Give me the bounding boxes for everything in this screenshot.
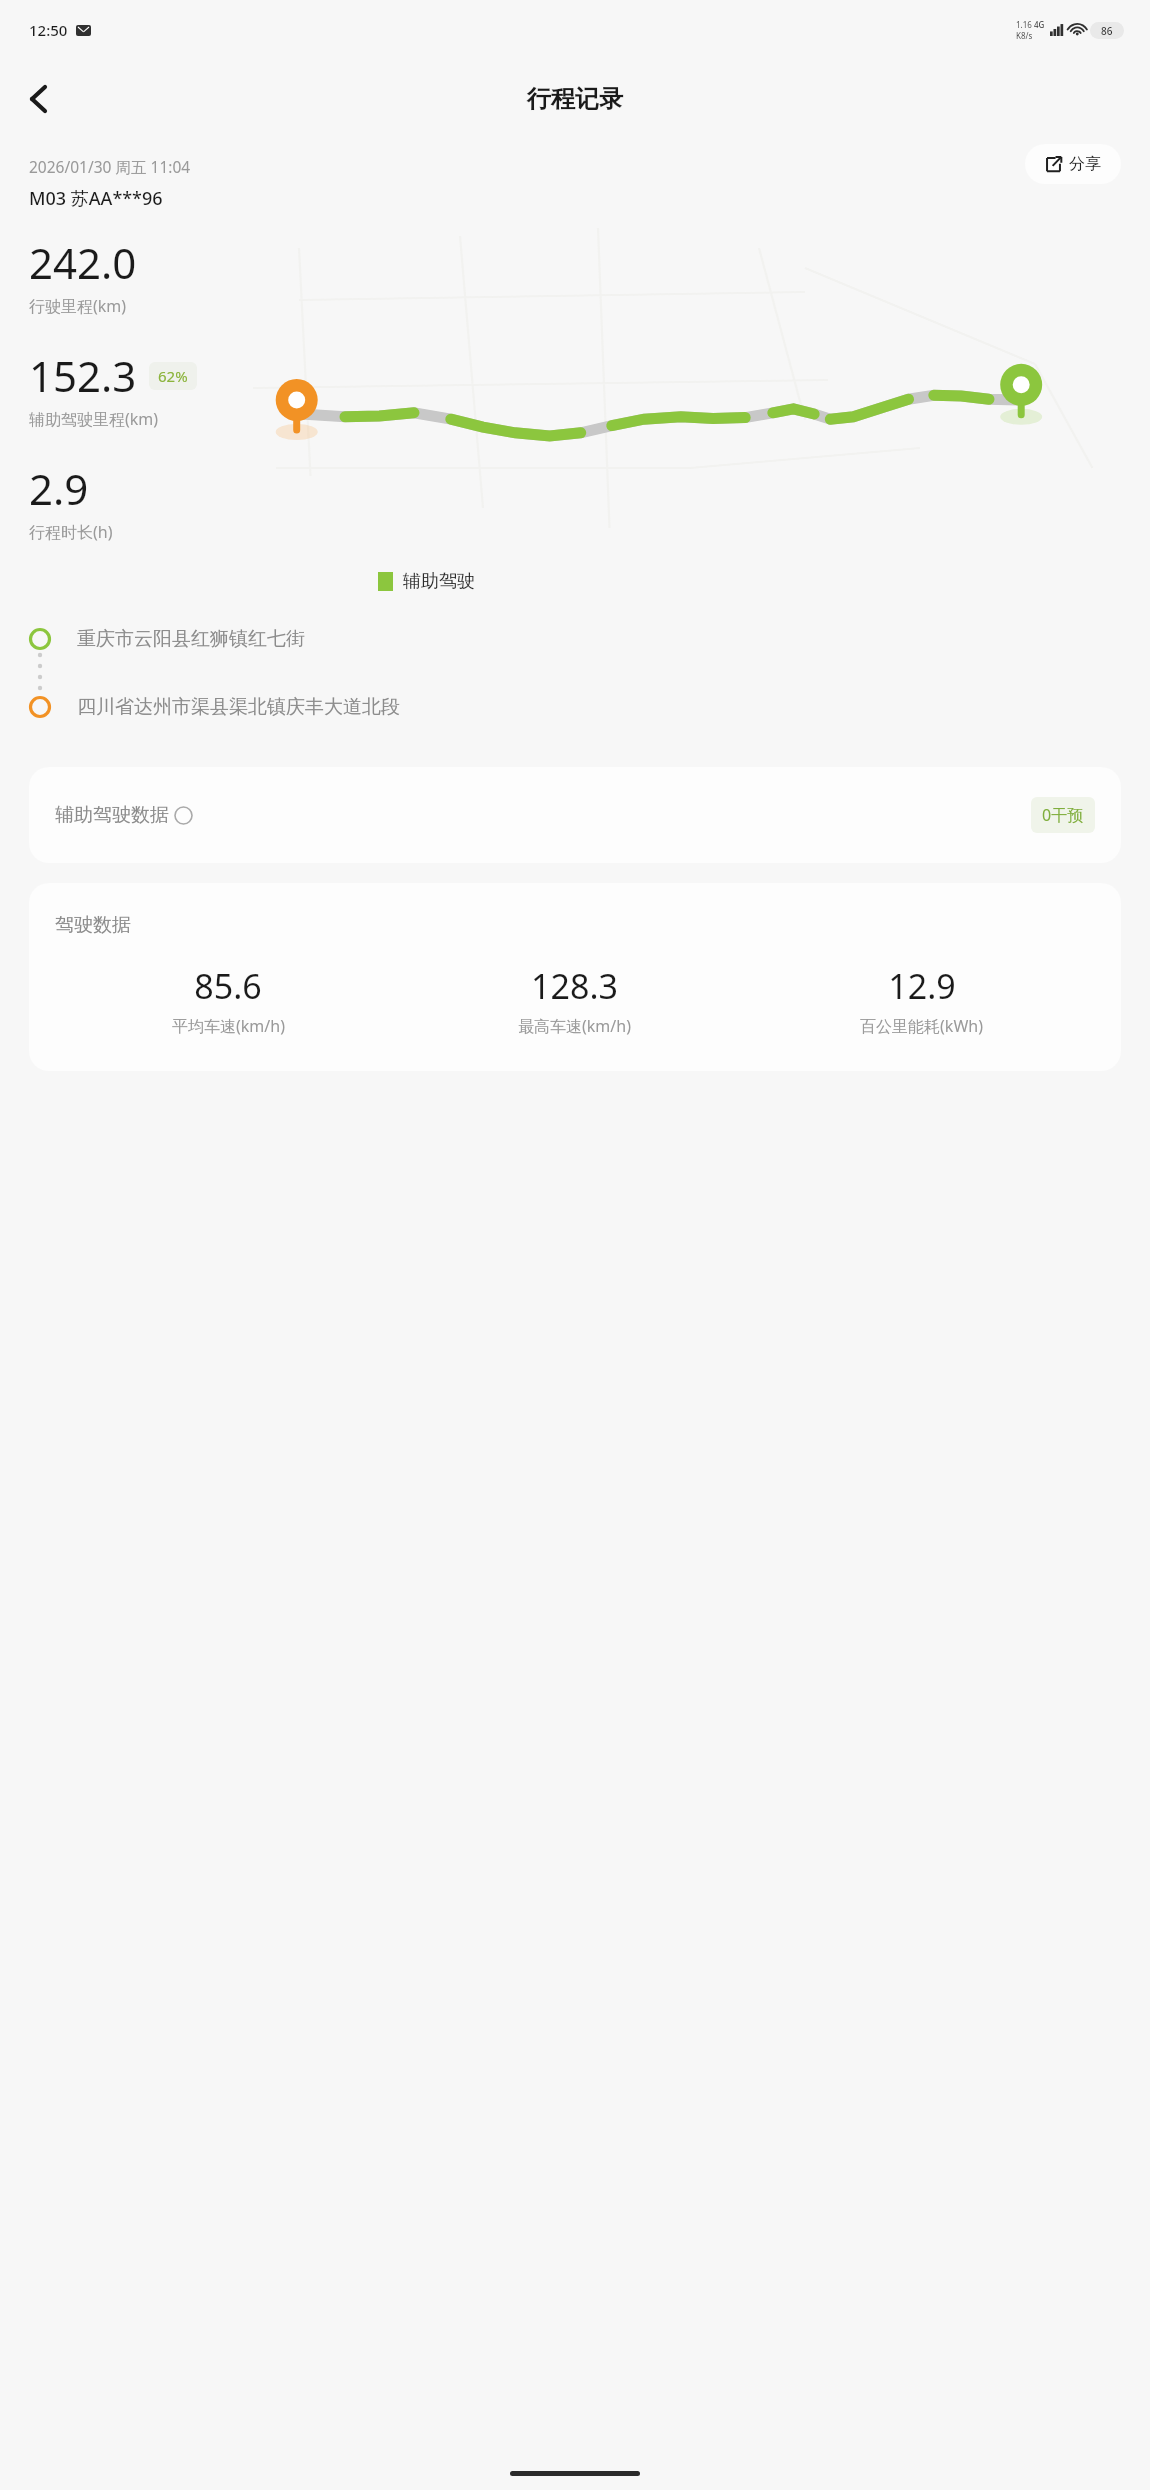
button[interactable]: 辅助驾驶数据 — [29, 767, 1121, 863]
staticText: 0干预 — [1042, 804, 1084, 826]
staticText: 辅助驾驶 — [403, 570, 475, 593]
button[interactable]: Back — [14, 75, 62, 123]
staticText: 辅助驾驶数据 — [55, 803, 169, 827]
staticText: 1.16 — [1016, 19, 1032, 30]
staticText: 平均车速(km/h) — [172, 1015, 285, 1037]
staticText: 12:50 — [29, 20, 68, 40]
staticText: 行程时长(h) — [29, 521, 113, 543]
staticText: 2026/01/30 周五 11:04 — [29, 156, 191, 177]
staticText: 行驶里程(km) — [29, 295, 127, 317]
staticText: 152.3 — [29, 347, 137, 404]
staticText: 85.6 — [194, 963, 262, 1009]
staticText: M03 苏AA***96 — [29, 186, 163, 211]
staticText: 12.9 — [888, 963, 956, 1009]
staticText: K8/s — [1016, 30, 1033, 41]
staticText: 128.3 — [531, 963, 618, 1009]
staticText: 4G — [1034, 19, 1045, 30]
staticText: 242.0 — [29, 234, 137, 291]
staticText: 重庆市云阳县红狮镇红七街 — [77, 627, 305, 651]
button[interactable]: 分享 — [1025, 144, 1121, 184]
staticText: 四川省达州市渠县渠北镇庆丰大道北段 — [77, 695, 400, 719]
staticText: 最高车速(km/h) — [518, 1015, 631, 1037]
staticText: 驾驶数据 — [55, 913, 131, 937]
staticText: 分享 — [1069, 154, 1101, 174]
staticText: 86 — [1101, 24, 1113, 38]
staticText: 62% — [158, 366, 188, 386]
staticText: 百公里能耗(kWh) — [860, 1015, 983, 1037]
staticText: 行程记录 — [527, 84, 623, 114]
staticText: 辅助驾驶里程(km) — [29, 408, 159, 430]
staticText: 2.9 — [29, 460, 89, 517]
